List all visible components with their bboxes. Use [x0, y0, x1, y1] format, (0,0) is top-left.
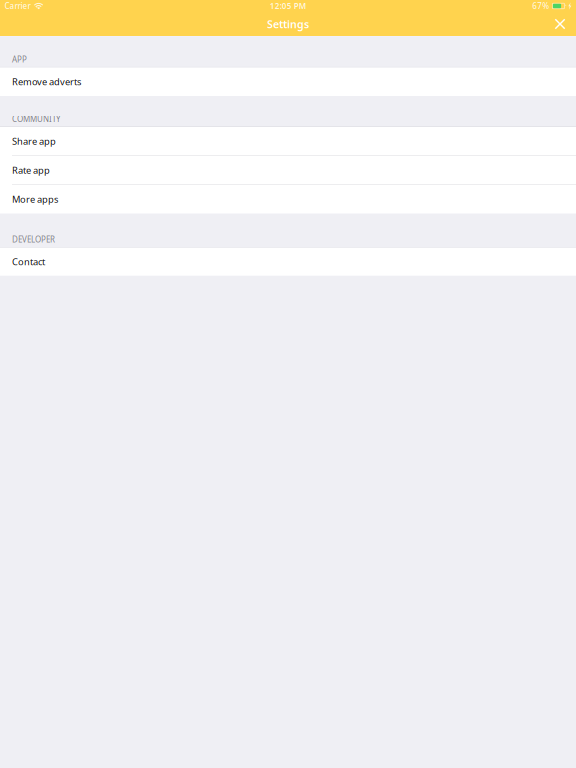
staticText: Carrier [4, 1, 30, 11]
staticText: APP [12, 54, 27, 65]
staticText: Share app [12, 135, 56, 147]
staticText: 12:05 PM [270, 1, 306, 11]
staticText: Rate app [12, 164, 50, 176]
staticText: Settings [267, 17, 309, 31]
button[interactable]: More apps [0, 185, 576, 213]
staticText: Remove adverts [12, 76, 81, 88]
staticText: 67% [532, 1, 549, 11]
staticText: DEVELOPER [12, 234, 55, 245]
button[interactable]: Contact [0, 248, 576, 276]
staticText: Contact [12, 255, 45, 268]
staticText: More apps [12, 193, 58, 205]
button[interactable]: Rate app [0, 156, 576, 185]
button[interactable]: Close [549, 14, 571, 34]
staticText: COMMUNITY [12, 113, 61, 124]
button[interactable]: Remove adverts [0, 67, 576, 96]
button[interactable]: Share app [0, 127, 576, 156]
